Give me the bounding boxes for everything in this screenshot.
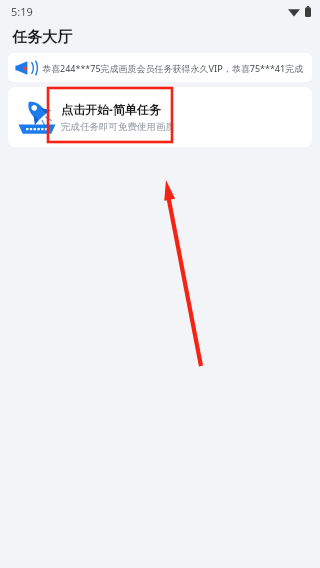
staticText: 恭喜244***75完成画质会员任务获得永久VIP，恭喜75***41完成画质会… — [42, 62, 306, 74]
button[interactable]: 任务 — [8, 87, 312, 147]
staticText: 完成任务即可免费使用画质 — [61, 121, 175, 133]
staticText: 任务大厅 — [12, 28, 72, 47]
other: 任务 — [16, 96, 58, 138]
staticText: 5:19 — [11, 4, 33, 19]
staticText: 点击开始-简单任务 — [61, 101, 161, 117]
other: 公告 — [15, 58, 35, 78]
button[interactable]: 公告 — [8, 53, 312, 82]
